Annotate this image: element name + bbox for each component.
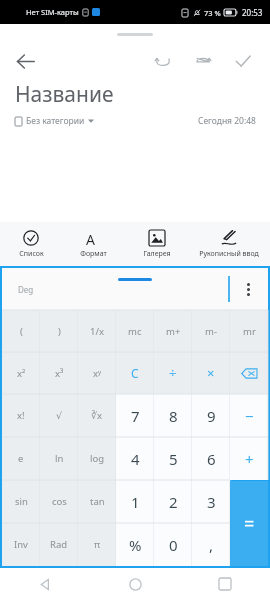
button[interactable]: 8 <box>154 394 192 437</box>
staticText: ∛x <box>91 409 103 422</box>
staticText: 9 <box>207 406 216 426</box>
staticText: Rad <box>50 538 68 551</box>
button[interactable]: mr <box>230 310 268 352</box>
button[interactable]: tan <box>78 480 116 523</box>
button[interactable]: Aa <box>62 222 125 266</box>
staticText: Галерея <box>143 249 171 259</box>
staticText: ln <box>55 452 64 465</box>
staticText: 4 <box>131 449 140 469</box>
button[interactable]: 5 <box>154 437 192 480</box>
staticText: 5 <box>169 449 178 469</box>
staticText: x³ <box>55 367 64 380</box>
staticText: 6 <box>207 449 216 469</box>
staticText: ) <box>58 325 61 338</box>
staticText: Формат <box>80 249 107 259</box>
staticText: √ <box>56 410 63 421</box>
button[interactable]: sin <box>2 480 40 523</box>
staticText: ÷ <box>169 364 177 382</box>
button[interactable]: Отменить <box>148 46 178 76</box>
staticText: + <box>245 449 254 469</box>
button[interactable]: x! <box>2 394 40 437</box>
button[interactable]: m+ <box>154 310 192 352</box>
button[interactable]: C <box>116 352 154 394</box>
button[interactable]: Галерея <box>125 222 188 266</box>
button[interactable]: Главный экран <box>90 568 180 600</box>
button[interactable]: Удалить <box>230 352 268 394</box>
staticText: sin <box>15 495 28 508</box>
staticText: x! <box>17 409 25 422</box>
button[interactable]: = <box>230 481 268 566</box>
staticText: 1 <box>131 492 140 512</box>
button[interactable]: xʸ <box>78 352 116 394</box>
button[interactable]: 3 <box>192 480 230 523</box>
staticText: 2 <box>169 492 178 512</box>
button[interactable]: 4 <box>116 437 154 480</box>
staticText: = <box>244 511 255 536</box>
button[interactable]: Rad <box>40 523 78 566</box>
staticText: mr <box>243 325 256 338</box>
staticText: m- <box>205 325 217 338</box>
button[interactable]: 1/x <box>78 310 116 352</box>
button[interactable]: ) <box>40 310 78 352</box>
staticText: − <box>245 406 254 426</box>
button[interactable]: ( <box>2 310 40 352</box>
staticText: C <box>131 365 139 381</box>
button[interactable]: % <box>116 523 154 566</box>
button[interactable]: Назад <box>10 46 40 76</box>
button[interactable]: mc <box>116 310 154 352</box>
button[interactable]: − <box>230 394 268 437</box>
button[interactable]: 7 <box>116 394 154 437</box>
button[interactable]: x³ <box>40 352 78 394</box>
button[interactable]: Дополнительно <box>241 280 255 298</box>
staticText: xʸ <box>93 367 102 380</box>
button[interactable]: 2 <box>154 480 192 523</box>
staticText: Aa <box>86 230 102 246</box>
button[interactable]: log <box>78 437 116 480</box>
button[interactable]: cos <box>40 480 78 523</box>
staticText: 7 <box>131 406 140 426</box>
button[interactable]: ln <box>40 437 78 480</box>
button[interactable]: Готово <box>228 46 258 76</box>
button[interactable]: Без категории <box>15 115 94 127</box>
button[interactable]: × <box>192 352 230 394</box>
staticText: Название <box>15 80 114 109</box>
staticText: , <box>209 535 214 555</box>
button[interactable]: Повторить <box>188 46 218 76</box>
staticText: × <box>207 364 215 382</box>
button[interactable]: Список <box>0 222 62 266</box>
button[interactable]: ÷ <box>154 352 192 394</box>
staticText: 8 <box>169 406 178 426</box>
button[interactable]: π <box>78 523 116 566</box>
staticText: Список <box>19 249 44 259</box>
button[interactable]: Назад <box>0 568 90 600</box>
staticText: 3 <box>207 492 216 512</box>
staticText: π <box>94 538 101 551</box>
staticText: Deg <box>18 284 34 295</box>
staticText: m+ <box>166 325 181 338</box>
staticText: % <box>129 535 142 555</box>
staticText: 1/x <box>90 325 104 338</box>
button[interactable]: x² <box>2 352 40 394</box>
staticText: 20:53 <box>242 7 263 18</box>
button[interactable]: Рукописный ввод <box>188 222 270 266</box>
staticText: log <box>90 452 105 465</box>
staticText: tan <box>90 495 105 508</box>
button[interactable]: 0 <box>154 523 192 566</box>
button[interactable]: 6 <box>192 437 230 480</box>
staticText: Сегодня 20:48 <box>198 115 256 127</box>
button[interactable]: m- <box>192 310 230 352</box>
staticText: x² <box>17 367 26 380</box>
button[interactable]: √ <box>40 394 78 437</box>
button[interactable]: + <box>230 437 268 480</box>
button[interactable]: Inv <box>2 523 40 566</box>
button[interactable]: ∛x <box>78 394 116 437</box>
button[interactable]: 9 <box>192 394 230 437</box>
button[interactable]: , <box>192 523 230 566</box>
button[interactable]: Обзор <box>180 568 270 600</box>
staticText: 0 <box>169 535 178 555</box>
staticText: e <box>18 452 24 465</box>
staticText: Без категории <box>26 115 85 127</box>
button[interactable]: 1 <box>116 480 154 523</box>
button[interactable]: e <box>2 437 40 480</box>
staticText: cos <box>52 495 67 508</box>
